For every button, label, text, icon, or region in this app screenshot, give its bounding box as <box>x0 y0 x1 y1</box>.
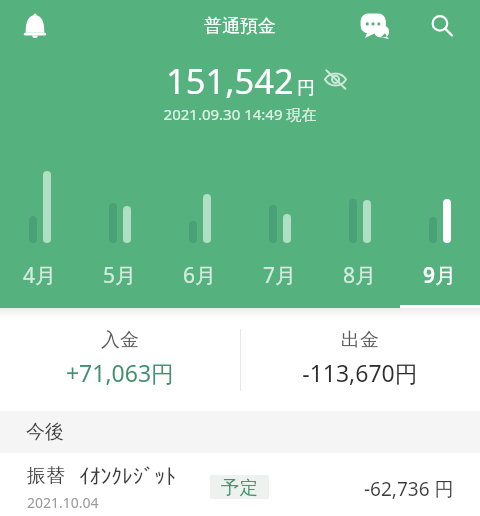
button[interactable]: 7月 <box>240 163 320 290</box>
button[interactable]: 4月 <box>0 163 80 290</box>
button[interactable]: 9月 <box>400 163 480 290</box>
button[interactable]: Search <box>420 4 464 48</box>
button[interactable]: Messages <box>352 4 396 48</box>
button[interactable]: 6月 <box>160 163 240 290</box>
staticText: +71,063円 <box>0 357 240 388</box>
staticText: -113,670円 <box>240 357 480 388</box>
staticText: 6月 <box>183 261 217 290</box>
button[interactable]: 出金 <box>240 308 480 411</box>
button[interactable]: 振替 <box>0 453 480 515</box>
staticText: 出金 <box>240 328 480 352</box>
staticText: 7月 <box>263 261 297 290</box>
button[interactable]: Hide balance <box>324 69 347 89</box>
staticText: ｲｵﾝｸﾚｼﾞｯﾄ <box>79 465 176 487</box>
staticText: 普通預金 <box>0 15 480 38</box>
staticText: -62,736 円 <box>364 476 454 502</box>
staticText: 振替 <box>27 464 65 488</box>
staticText: 予定 <box>221 476 258 499</box>
staticText: 今後 <box>26 420 64 444</box>
staticText: 円 <box>297 77 315 100</box>
button[interactable]: Notifications <box>13 4 57 48</box>
button[interactable]: 5月 <box>80 163 160 290</box>
button[interactable]: 入金 <box>0 308 240 411</box>
staticText: 8月 <box>343 261 377 290</box>
staticText: 入金 <box>0 328 240 352</box>
staticText: 5月 <box>103 261 137 290</box>
staticText: 2021.09.30 14:49 現在 <box>0 104 480 124</box>
staticText: 151,542 <box>166 57 294 104</box>
button[interactable]: 8月 <box>320 163 400 290</box>
staticText: 4月 <box>23 261 57 290</box>
staticText: 9月 <box>423 261 457 290</box>
staticText: 2021.10.04 <box>27 493 99 512</box>
